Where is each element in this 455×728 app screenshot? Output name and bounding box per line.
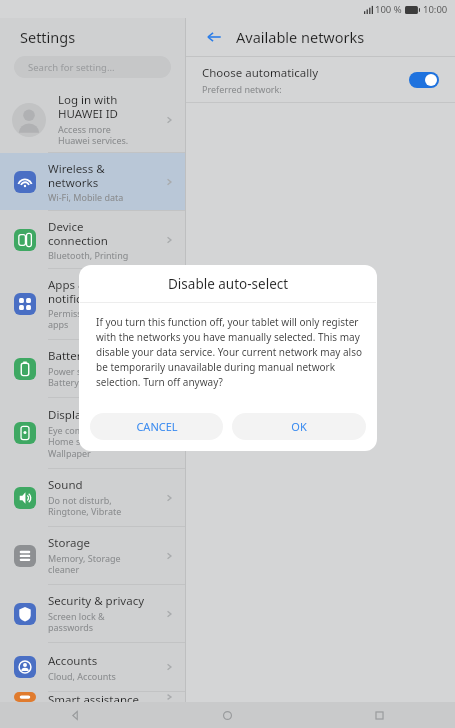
staticText: Wi-Fi, Mobile data bbox=[48, 191, 124, 203]
staticText: Choose automatically bbox=[202, 65, 319, 81]
staticText: Device connection bbox=[48, 219, 108, 248]
staticText: Sound bbox=[48, 477, 83, 493]
staticText: Accounts bbox=[48, 653, 98, 669]
staticText: 100 % bbox=[375, 3, 402, 16]
staticText: Power saving mode, Battery usage bbox=[48, 365, 134, 389]
staticText: Log in with HUAWEI ID bbox=[58, 92, 118, 121]
button[interactable]: Choose automatically bbox=[186, 57, 455, 102]
button[interactable]: Search for setting... bbox=[14, 56, 171, 78]
staticText: Security & privacy bbox=[48, 593, 145, 609]
button[interactable]: Apps & notifications bbox=[0, 269, 185, 339]
staticText: CANCEL bbox=[136, 419, 178, 434]
staticText: Permissions, Default apps bbox=[48, 307, 135, 331]
staticText: 10:00 bbox=[423, 3, 448, 16]
button[interactable]: Device connection bbox=[0, 211, 185, 268]
staticText: Wireless & networks bbox=[48, 161, 105, 190]
button[interactable]: Battery bbox=[0, 340, 185, 397]
button[interactable]: Home bbox=[151, 702, 303, 728]
staticText: Disable auto-select bbox=[168, 275, 289, 293]
button[interactable]: Sound bbox=[0, 469, 185, 526]
button[interactable]: Wireless & networks bbox=[0, 153, 185, 210]
staticText: If you turn this function off, your tabl… bbox=[96, 315, 363, 389]
staticText: OK bbox=[291, 419, 307, 434]
staticText: Access more Huawei services. bbox=[58, 123, 129, 147]
button[interactable]: OK bbox=[232, 413, 366, 440]
button[interactable]: Log in with HUAWEI ID bbox=[0, 87, 185, 152]
button[interactable]: Smart assistance bbox=[0, 692, 185, 702]
staticText: Battery bbox=[48, 348, 88, 364]
button[interactable]: Recents bbox=[303, 702, 455, 728]
staticText: Settings bbox=[20, 27, 76, 47]
button[interactable]: Storage bbox=[0, 527, 185, 584]
button[interactable]: Display bbox=[0, 398, 185, 468]
staticText: Storage bbox=[48, 535, 90, 551]
staticText: Screen lock & passwords bbox=[48, 610, 105, 634]
staticText: Bluetooth, Printing bbox=[48, 249, 129, 261]
staticText: Search for setting... bbox=[28, 61, 115, 74]
staticText: Eye comfort, Home screen style, Wallpape… bbox=[48, 424, 129, 460]
staticText: Cloud, Accounts bbox=[48, 670, 116, 682]
button[interactable]: Security & privacy bbox=[0, 585, 185, 642]
staticText: Apps & notifications bbox=[48, 277, 115, 306]
staticText: Smart assistance bbox=[48, 692, 140, 702]
button[interactable]: Choose automatically toggle bbox=[409, 72, 439, 88]
staticText: Display bbox=[48, 407, 88, 423]
button[interactable]: CANCEL bbox=[90, 413, 223, 440]
button[interactable]: Back bbox=[0, 702, 151, 728]
staticText: Memory, Storage cleaner bbox=[48, 552, 121, 576]
button[interactable]: Accounts bbox=[0, 643, 185, 691]
staticText: Do not disturb, Ringtone, Vibrate bbox=[48, 494, 122, 518]
staticText: Available networks bbox=[236, 27, 365, 47]
staticText: Preferred network: bbox=[202, 83, 282, 95]
button[interactable]: Back bbox=[202, 25, 226, 49]
